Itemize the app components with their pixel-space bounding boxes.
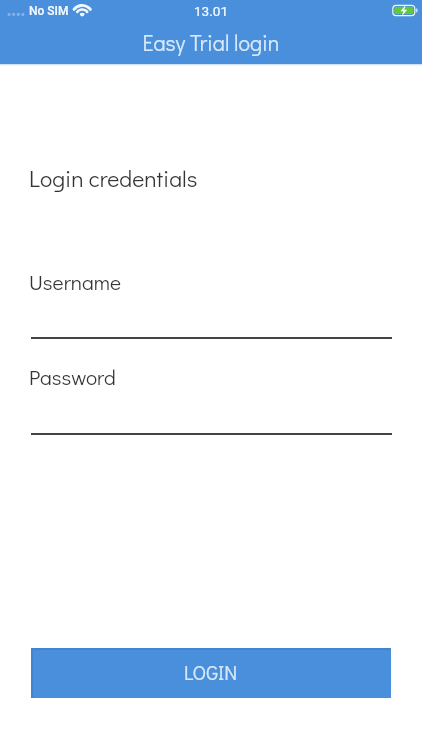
staticText: 13.01 bbox=[0, 3, 422, 19]
other: Cellular signal strength bbox=[6, 10, 26, 18]
staticText: Easy Trial login bbox=[0, 28, 422, 56]
staticText: Password bbox=[29, 363, 116, 391]
button[interactable]: Username bbox=[29, 262, 393, 340]
button[interactable]: LOGIN bbox=[31, 648, 391, 698]
staticText: No SIM bbox=[29, 4, 69, 18]
button[interactable]: Password bbox=[29, 357, 393, 435]
staticText: Username bbox=[29, 268, 122, 296]
other: Wi-Fi connected bbox=[73, 2, 93, 18]
staticText: LOGIN bbox=[184, 659, 238, 685]
staticText: Login credentials bbox=[29, 163, 198, 193]
other: Battery charging bbox=[391, 3, 419, 17]
